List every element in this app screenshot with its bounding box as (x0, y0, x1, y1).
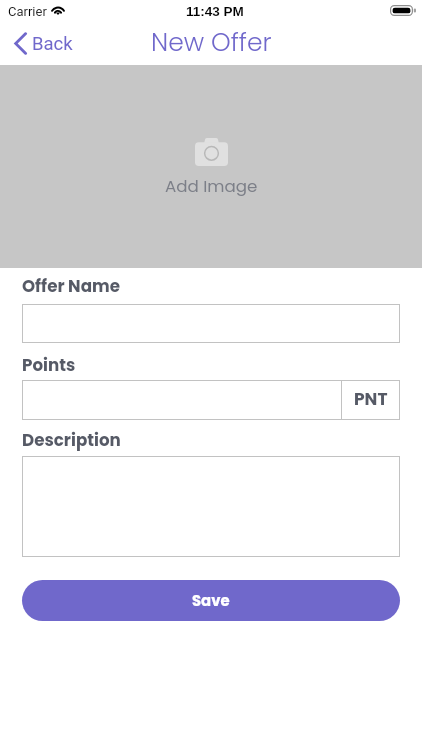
staticText: PNT (354, 387, 388, 411)
staticText: Back (32, 33, 73, 55)
staticText: Add Image (165, 174, 258, 197)
staticText: Offer Name (22, 274, 120, 297)
button[interactable]: Points input (22, 380, 341, 420)
button[interactable]: Offer name input (22, 304, 400, 343)
staticText: Points (22, 353, 76, 376)
staticText: 11:43 PM (186, 4, 244, 19)
staticText: Carrier (8, 4, 47, 19)
staticText: New Offer (151, 25, 272, 60)
button[interactable]: Description input (22, 456, 400, 557)
button[interactable]: PNT (342, 380, 400, 420)
button[interactable]: Add Image (0, 65, 422, 268)
staticText: Save (192, 590, 230, 611)
staticText: Description (22, 428, 121, 451)
button[interactable]: Save (22, 580, 400, 621)
button[interactable]: Back (6, 27, 85, 60)
